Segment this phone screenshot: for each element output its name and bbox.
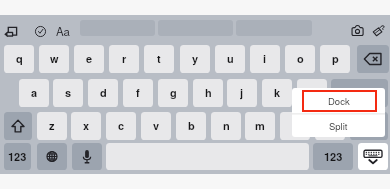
staticText: y — [192, 51, 199, 67]
button[interactable]: v — [141, 112, 171, 140]
staticText: 123 — [8, 149, 27, 165]
button[interactable]: d — [88, 79, 118, 107]
staticText: r — [122, 51, 127, 67]
button[interactable]: r — [109, 45, 139, 73]
staticText: Aa — [56, 23, 71, 37]
button[interactable]: 123 — [313, 143, 353, 170]
button[interactable]: n — [211, 112, 241, 140]
button[interactable]: Split — [292, 114, 385, 137]
button[interactable]: Autocorrect — [35, 26, 46, 37]
button[interactable]: x — [71, 112, 101, 140]
button[interactable]: b — [176, 112, 206, 140]
button[interactable]: Language — [37, 143, 67, 170]
staticText: 123 — [324, 149, 343, 165]
staticText: t — [157, 51, 161, 67]
button[interactable]: h — [193, 79, 223, 107]
staticText: c — [118, 118, 125, 134]
button[interactable]: o — [285, 45, 315, 73]
staticText: b — [188, 118, 195, 134]
button[interactable]: l — [297, 79, 327, 107]
staticText: f — [136, 85, 140, 101]
button[interactable]: 123 — [4, 143, 31, 170]
staticText: a — [31, 85, 38, 101]
staticText: . — [328, 118, 332, 134]
button[interactable]: p — [320, 45, 350, 73]
staticText: Dock — [328, 94, 350, 108]
button[interactable]: a — [19, 79, 49, 107]
staticText: m — [255, 118, 265, 134]
staticText: s — [65, 85, 72, 101]
button[interactable]: u — [215, 45, 245, 73]
button[interactable]: Backspace — [357, 45, 389, 73]
button[interactable]: t — [144, 45, 174, 73]
staticText: i — [263, 51, 267, 67]
staticText: l — [310, 85, 314, 101]
staticText: e — [86, 51, 93, 67]
staticText: v — [153, 118, 160, 134]
staticText: Split — [329, 119, 348, 133]
staticText: u — [227, 51, 234, 67]
staticText: n — [223, 118, 230, 134]
button[interactable]: q — [4, 45, 34, 73]
button[interactable]: s — [53, 79, 83, 107]
button[interactable]: e — [74, 45, 104, 73]
staticText: x — [83, 118, 90, 134]
staticText: o — [297, 51, 304, 67]
button[interactable]: Dictation — [72, 143, 102, 170]
staticText: j — [240, 85, 244, 101]
button[interactable]: j — [227, 79, 257, 107]
staticText: g — [170, 85, 177, 101]
button[interactable]: w — [39, 45, 69, 73]
staticText: h — [205, 85, 212, 101]
staticText: k — [274, 85, 281, 101]
button[interactable]: Return — [331, 79, 388, 107]
button[interactable]: f — [123, 79, 153, 107]
staticText: p — [332, 51, 339, 67]
staticText: w — [50, 51, 59, 67]
button[interactable]: m — [245, 112, 275, 140]
button[interactable]: c — [106, 112, 136, 140]
button[interactable]: Hide keyboard — [358, 143, 388, 170]
button[interactable]: g — [158, 79, 188, 107]
button[interactable]: Camera — [351, 25, 364, 36]
button[interactable]: , — [280, 112, 310, 140]
button[interactable]: Dock — [292, 88, 385, 114]
button[interactable]: . — [315, 112, 345, 140]
button[interactable]: Aa — [55, 23, 71, 37]
button[interactable]: i — [250, 45, 280, 73]
button[interactable]: Shift — [4, 112, 32, 140]
button[interactable]: z — [37, 112, 67, 140]
button[interactable]: Markup — [373, 25, 385, 36]
button[interactable]: Undo — [4, 25, 17, 37]
button[interactable]: Shift — [350, 112, 388, 140]
staticText: d — [100, 85, 107, 101]
staticText: z — [49, 118, 55, 134]
button[interactable]: y — [180, 45, 210, 73]
button[interactable]: k — [262, 79, 292, 107]
staticText: q — [16, 51, 23, 67]
